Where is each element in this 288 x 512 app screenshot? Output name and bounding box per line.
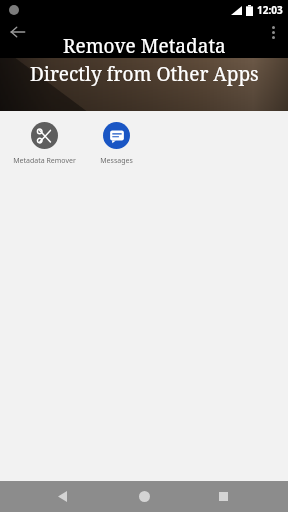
button[interactable]: Recent apps (207, 481, 239, 512)
button[interactable]: More options (258, 20, 288, 44)
staticText: Messages (100, 156, 133, 166)
button[interactable]: Messages (80, 118, 152, 170)
button[interactable]: Back (46, 481, 78, 512)
staticText: Remove Metadata (63, 33, 226, 59)
staticText: Directly from Other Apps (30, 61, 259, 87)
button[interactable]: Metadata Remover (8, 118, 80, 170)
staticText: Metadata Remover (13, 156, 76, 166)
staticText: 12:03 (257, 3, 283, 17)
button[interactable]: Home (128, 481, 160, 512)
button[interactable]: Back (0, 20, 36, 44)
